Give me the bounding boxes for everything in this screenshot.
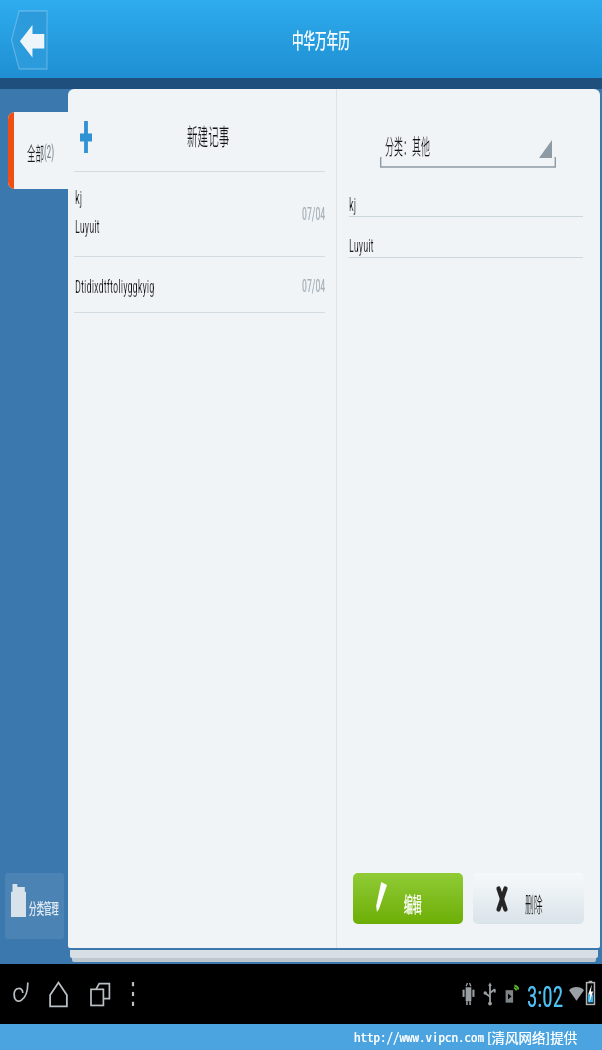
staticText: 07/04	[302, 203, 326, 224]
button[interactable]: Recent apps	[80, 964, 120, 1024]
staticText: [清风网络]提供	[487, 1027, 578, 1047]
button[interactable]: Back	[11, 10, 48, 70]
staticText: http://www.vipcn.com	[354, 1027, 484, 1046]
button[interactable]: 新建记事	[68, 89, 336, 171]
staticText: 新建记事	[187, 118, 229, 151]
staticText: 3:02	[527, 979, 563, 1014]
button[interactable]: 分类管理	[5, 873, 64, 939]
staticText: Luyuit	[75, 215, 100, 237]
staticText: 删除	[525, 888, 543, 918]
staticText: Dtidixdtftoliyggkyig	[75, 275, 155, 297]
staticText: kj	[349, 193, 356, 215]
staticText: Luyuit	[349, 234, 374, 256]
staticText: (2)	[44, 141, 54, 162]
staticText: 分类：其他	[385, 130, 430, 160]
button[interactable]: 编辑	[353, 873, 463, 924]
staticText: 分类管理	[29, 897, 58, 919]
staticText: 全部	[27, 139, 44, 167]
staticText: 编辑	[404, 888, 422, 918]
button[interactable]: 全部	[8, 112, 70, 189]
button[interactable]: Back	[0, 964, 42, 1024]
staticText: 07/04	[302, 275, 326, 296]
button[interactable]: Dtidixdtftoliyggkyig	[68, 256, 336, 312]
button[interactable]: 删除	[473, 873, 584, 924]
button[interactable]: 分类：其他	[380, 130, 556, 169]
staticText: kj	[75, 186, 82, 208]
button[interactable]: kj	[68, 171, 336, 256]
staticText: 中华万年历	[292, 24, 350, 54]
button[interactable]: Home	[36, 964, 80, 1024]
button[interactable]: Menu	[113, 964, 153, 1024]
